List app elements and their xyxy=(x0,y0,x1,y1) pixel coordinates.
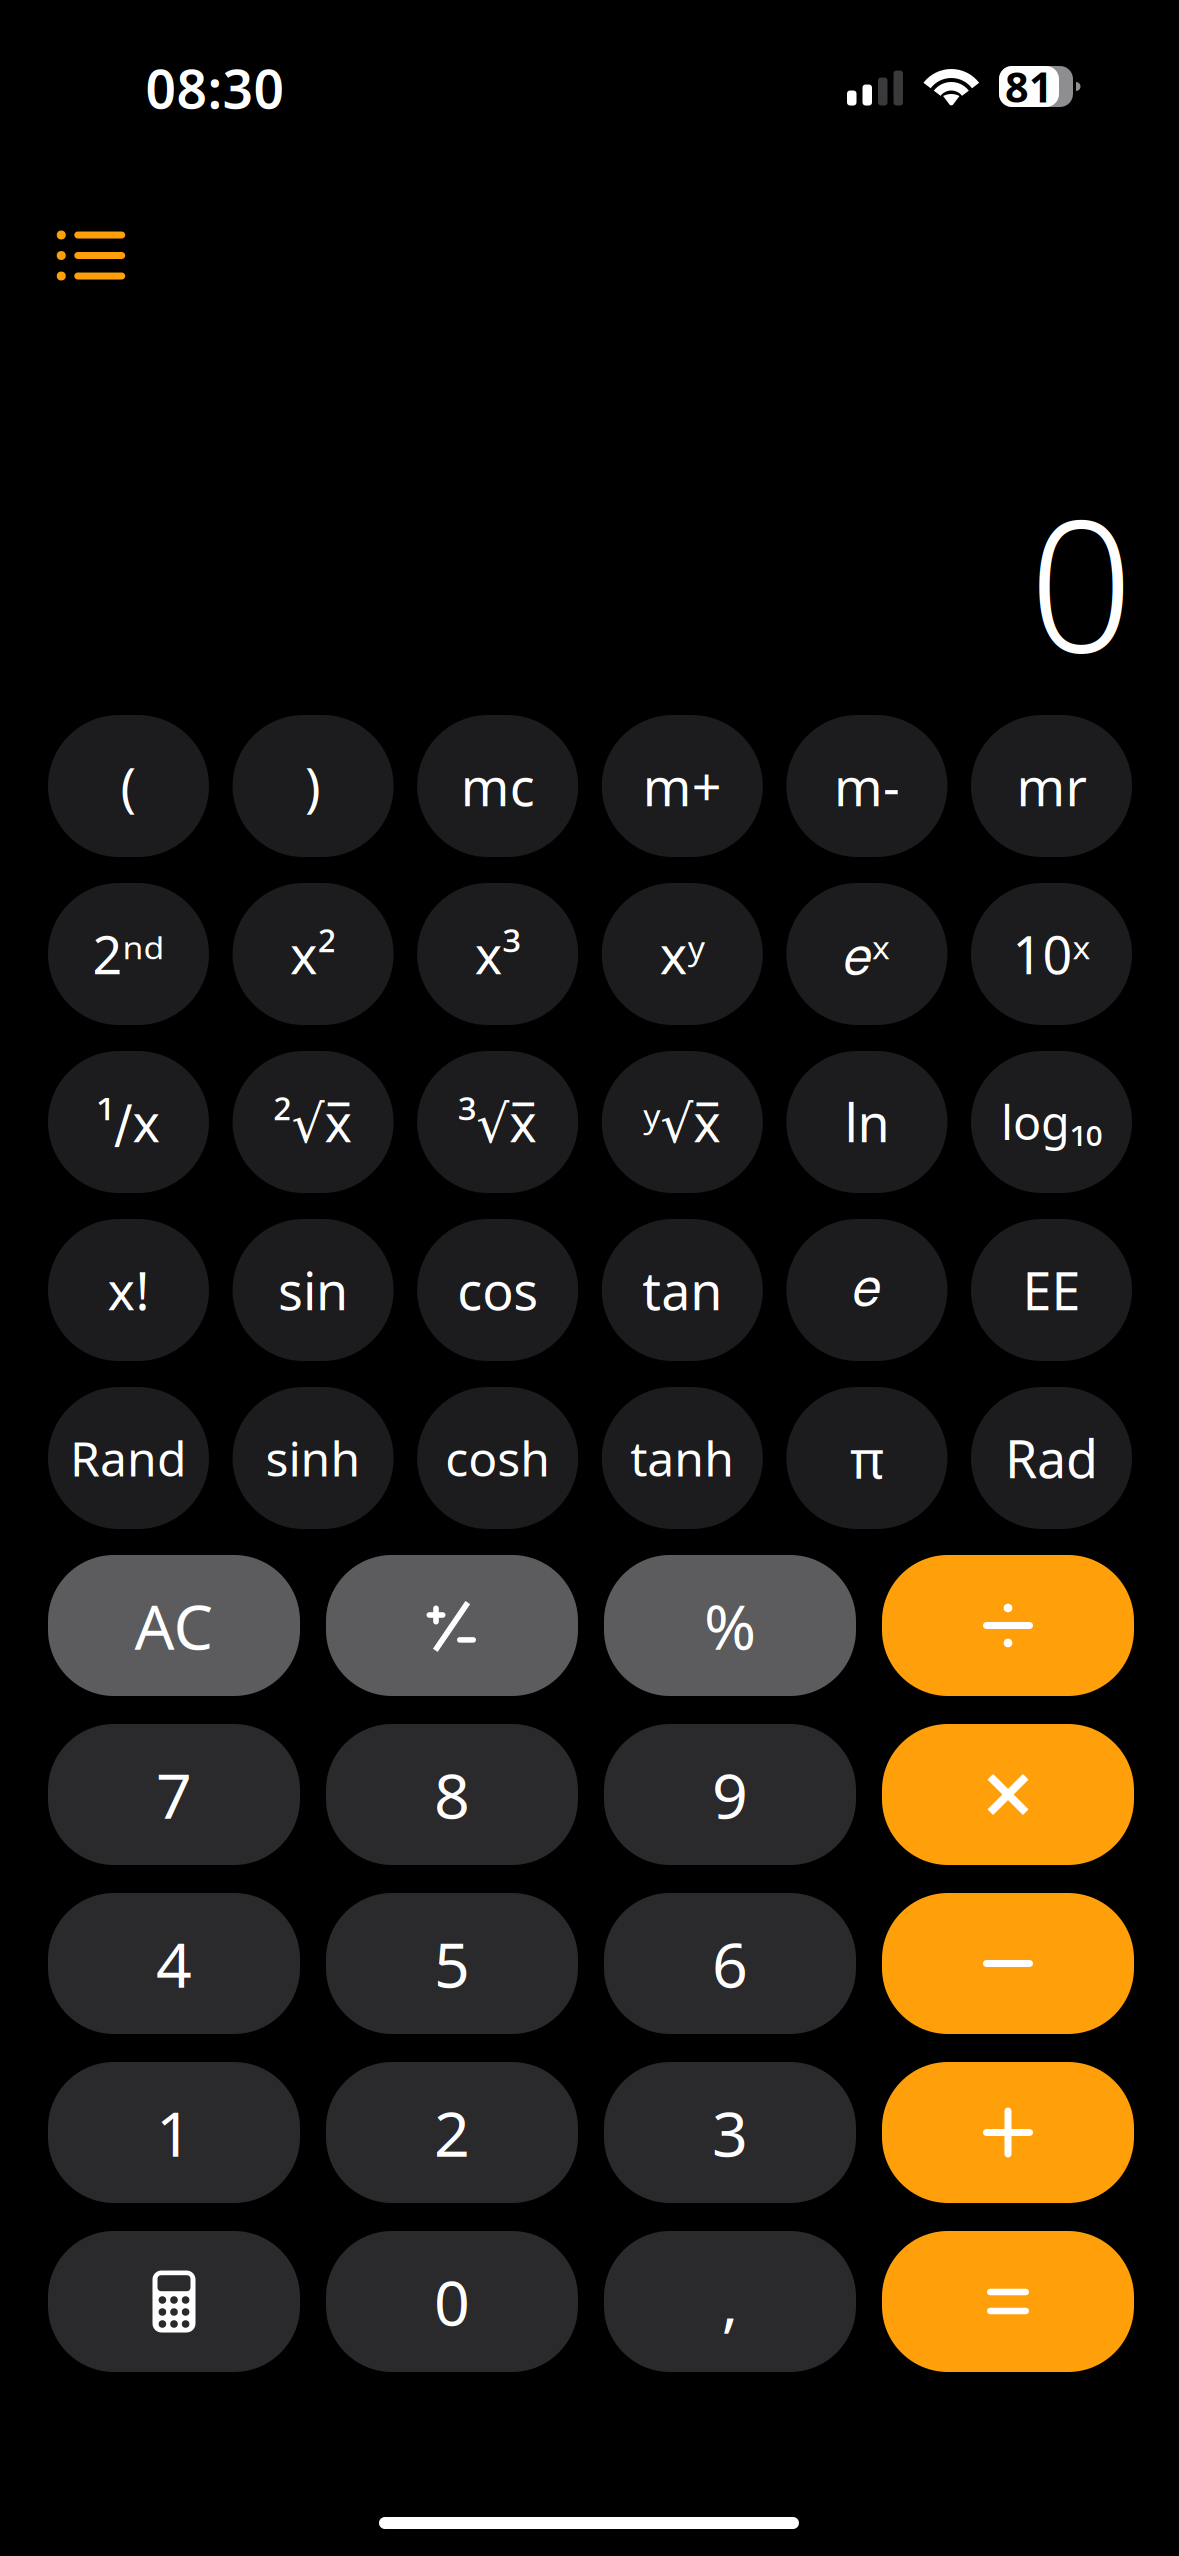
staticText: 7 xyxy=(156,1753,192,1836)
button[interactable]: Divide xyxy=(882,1555,1134,1696)
staticText: ³√x̅ xyxy=(458,1087,537,1157)
button[interactable]: sinh xyxy=(233,1387,394,1529)
button[interactable]: x³ xyxy=(417,883,578,1025)
button[interactable]: ʸ√x̅ xyxy=(602,1051,763,1193)
staticText: 5 xyxy=(434,1922,470,2005)
staticText: m- xyxy=(834,751,900,821)
button[interactable]: 0 xyxy=(326,2231,578,2372)
staticText: 81 xyxy=(1005,59,1053,114)
button[interactable]: AC xyxy=(48,1555,300,1696)
button[interactable]: m+ xyxy=(602,715,763,857)
staticText: log₁₀ xyxy=(1001,1091,1102,1153)
staticText: tan xyxy=(642,1255,722,1325)
staticText: 1 xyxy=(156,2091,192,2174)
button[interactable]: Equals xyxy=(882,2231,1134,2372)
staticText: Rand xyxy=(70,1426,187,1490)
button[interactable]: tanh xyxy=(602,1387,763,1529)
staticText: sin xyxy=(278,1255,348,1325)
button[interactable]: xʸ xyxy=(602,883,763,1025)
button[interactable]: , xyxy=(604,2231,856,2372)
staticText: x³ xyxy=(475,919,521,989)
button[interactable]: 4 xyxy=(48,1893,300,2034)
staticText: mr xyxy=(1016,751,1086,821)
button[interactable]: % xyxy=(604,1555,856,1696)
button[interactable]: 7 xyxy=(48,1724,300,1865)
button[interactable]: 9 xyxy=(604,1724,856,1865)
staticText: xʸ xyxy=(660,919,705,989)
button[interactable]: sin xyxy=(233,1219,394,1361)
button[interactable]: 𝑒ˣ xyxy=(786,883,947,1025)
staticText: 2ⁿᵈ xyxy=(92,919,164,989)
button[interactable]: 2ⁿᵈ xyxy=(48,883,209,1025)
staticText: ( xyxy=(120,751,136,821)
staticText: , xyxy=(721,2260,738,2343)
staticText: 08:30 xyxy=(145,53,284,123)
staticText: ²√x̅ xyxy=(274,1087,353,1157)
staticText: 𝑒ˣ xyxy=(844,919,890,989)
button[interactable]: x² xyxy=(233,883,394,1025)
staticText: x! xyxy=(107,1255,149,1325)
button[interactable]: ln xyxy=(786,1051,947,1193)
staticText: AC xyxy=(134,1584,213,1667)
staticText: ) xyxy=(305,751,321,821)
button[interactable]: log₁₀ xyxy=(971,1051,1132,1193)
button[interactable]: π xyxy=(786,1387,947,1529)
staticText: 9 xyxy=(712,1753,748,1836)
button[interactable]: Calculator history xyxy=(31,205,151,305)
staticText: 3 xyxy=(712,2091,748,2174)
button[interactable]: EE xyxy=(971,1219,1132,1361)
staticText: 0 xyxy=(1029,460,1133,702)
button[interactable]: tan xyxy=(602,1219,763,1361)
button[interactable]: ²√x̅ xyxy=(233,1051,394,1193)
button[interactable]: Subtract xyxy=(882,1893,1134,2034)
staticText: Rad xyxy=(1005,1423,1098,1493)
staticText: ¹∕x xyxy=(96,1087,160,1157)
staticText: 0 xyxy=(434,2260,470,2343)
button[interactable]: 𝑒 xyxy=(786,1219,947,1361)
staticText: EE xyxy=(1022,1255,1080,1325)
button[interactable]: 1 xyxy=(48,2062,300,2203)
staticText: cos xyxy=(457,1255,538,1325)
staticText: % xyxy=(704,1584,756,1667)
staticText: mc xyxy=(461,751,535,821)
staticText: ln xyxy=(844,1087,889,1157)
button[interactable]: Switch calculator mode xyxy=(48,2231,300,2372)
staticText: x² xyxy=(290,919,336,989)
staticText: m+ xyxy=(643,751,722,821)
button[interactable]: ³√x̅ xyxy=(417,1051,578,1193)
button[interactable]: cos xyxy=(417,1219,578,1361)
button[interactable]: ( xyxy=(48,715,209,857)
button[interactable]: 2 xyxy=(326,2062,578,2203)
button[interactable]: Rad xyxy=(971,1387,1132,1529)
staticText: sinh xyxy=(266,1426,361,1490)
staticText: π xyxy=(850,1423,884,1493)
staticText: 8 xyxy=(434,1753,470,1836)
button[interactable]: Plus minus xyxy=(326,1555,578,1696)
button[interactable]: mr xyxy=(971,715,1132,857)
staticText: 2 xyxy=(434,2091,470,2174)
button[interactable]: 6 xyxy=(604,1893,856,2034)
button[interactable]: m- xyxy=(786,715,947,857)
button[interactable]: ¹∕x xyxy=(48,1051,209,1193)
button[interactable]: Rand xyxy=(48,1387,209,1529)
button[interactable]: cosh xyxy=(417,1387,578,1529)
button[interactable]: ) xyxy=(233,715,394,857)
staticText: cosh xyxy=(445,1426,550,1490)
staticText: tanh xyxy=(630,1426,734,1490)
button[interactable]: mc xyxy=(417,715,578,857)
button[interactable]: 3 xyxy=(604,2062,856,2203)
button[interactable]: Multiply xyxy=(882,1724,1134,1865)
staticText: 𝑒 xyxy=(853,1265,881,1315)
button[interactable]: x! xyxy=(48,1219,209,1361)
button[interactable]: 10ˣ xyxy=(971,883,1132,1025)
button[interactable]: 8 xyxy=(326,1724,578,1865)
staticText: 6 xyxy=(712,1922,748,2005)
staticText: ʸ√x̅ xyxy=(643,1087,721,1157)
staticText: 10ˣ xyxy=(1012,919,1090,989)
button[interactable]: 5 xyxy=(326,1893,578,2034)
button[interactable]: Add xyxy=(882,2062,1134,2203)
staticText: 4 xyxy=(156,1922,192,2005)
